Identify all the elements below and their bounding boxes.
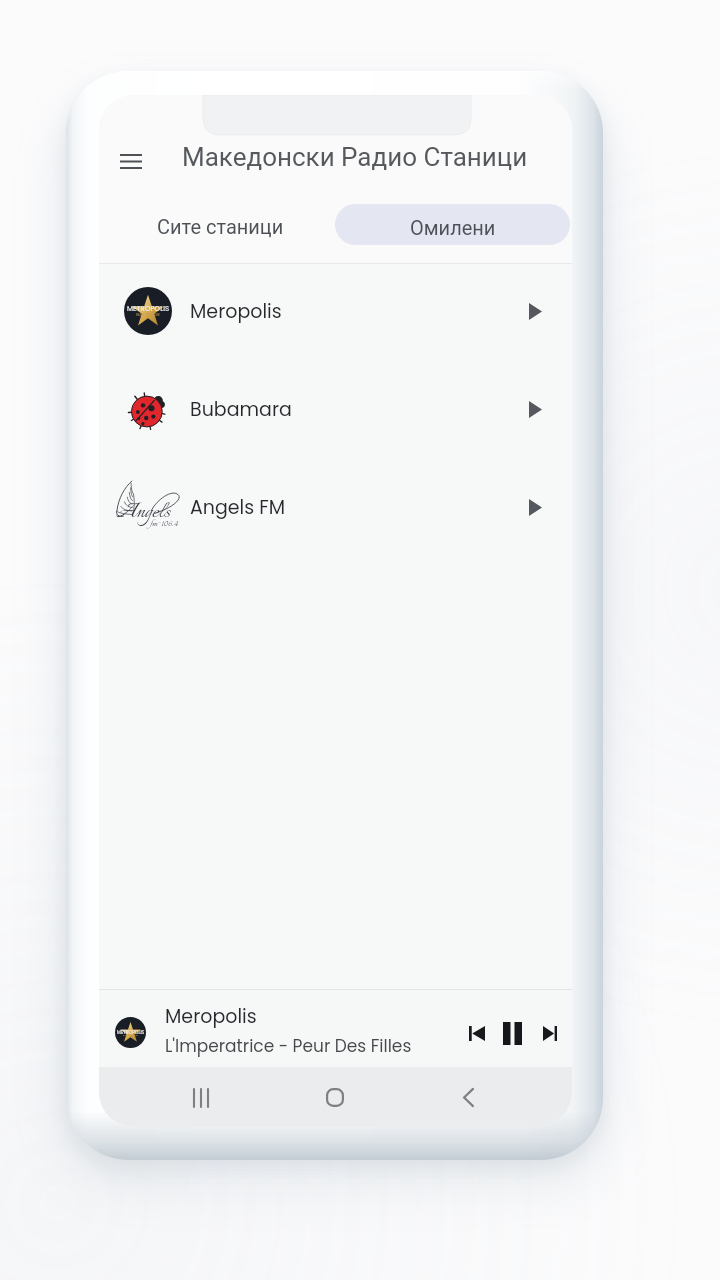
button[interactable]: Angels (99, 458, 572, 556)
button[interactable]: METROPOLIS (99, 990, 572, 1067)
button[interactable]: Open navigation menu (109, 143, 153, 179)
staticText: Македонски Радио Станици (182, 142, 528, 172)
staticText: Angels (116, 496, 171, 529)
staticText: Омилени (410, 216, 496, 239)
button[interactable]: Pause (495, 1007, 529, 1051)
button[interactable]: Recents (171, 1067, 231, 1127)
button[interactable]: Омилени (335, 204, 570, 245)
button[interactable]: Next track (533, 1007, 567, 1051)
staticText: RADIO NETWORK (136, 313, 160, 317)
button[interactable]: METROPOLIS (99, 262, 572, 360)
staticText: Meropolis (165, 1003, 257, 1030)
button[interactable]: Play Angels FM (512, 458, 558, 556)
staticText: METROPOLIS (127, 304, 170, 314)
button[interactable]: Сите станици (139, 205, 302, 247)
button[interactable]: Play Bubamara (512, 360, 558, 458)
staticText: Bubamara (190, 396, 292, 423)
button[interactable]: Bubamara (99, 360, 572, 458)
staticText: Meropolis (190, 298, 282, 325)
staticText: Сите станици (157, 215, 284, 238)
button[interactable]: Previous track (460, 1007, 494, 1051)
button[interactable]: Play Meropolis (512, 262, 558, 360)
staticText: fm~106.4 (150, 517, 179, 531)
staticText: Angels FM (190, 494, 286, 521)
button[interactable]: Home (305, 1067, 365, 1127)
staticText: RADIO NETWORK (123, 1034, 139, 1037)
button[interactable]: Back (438, 1067, 498, 1127)
staticText: L'Imperatrice - Peur Des Filles (165, 1034, 412, 1058)
staticText: METROPOLIS (117, 1029, 145, 1035)
